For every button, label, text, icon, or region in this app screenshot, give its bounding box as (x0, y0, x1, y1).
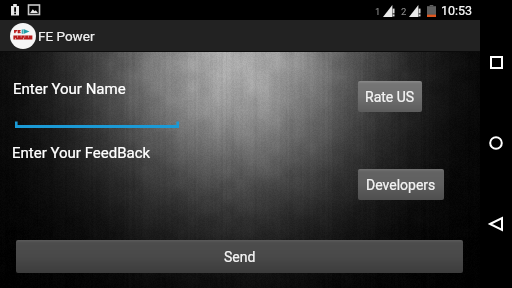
staticText: Enter Your FeedBack (12, 144, 151, 162)
button[interactable]: Rate US (358, 81, 422, 112)
button[interactable]: Recents (480, 46, 512, 78)
staticText: Rate US (365, 89, 415, 105)
button[interactable]: Send (16, 240, 463, 273)
staticText: Send (224, 249, 256, 265)
staticText: 2 (401, 6, 407, 17)
button[interactable]: Back (480, 208, 512, 240)
staticText: Enter Your Name (13, 80, 126, 98)
button[interactable]: Developers (358, 169, 444, 200)
button[interactable]: Home (480, 127, 512, 159)
staticText: 10:53 (441, 3, 473, 18)
staticText: 1 (375, 6, 381, 17)
staticText: Developers (366, 177, 436, 193)
staticText: FE Power (38, 28, 95, 44)
